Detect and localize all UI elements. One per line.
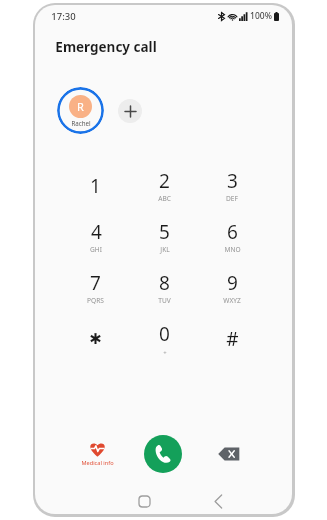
button[interactable]: R (57, 87, 104, 134)
button[interactable]: 7 (61, 264, 130, 315)
button[interactable]: 8 (130, 264, 198, 315)
button[interactable]: 2 (130, 162, 198, 213)
staticText: MNO (224, 245, 241, 254)
button[interactable]: Home (129, 488, 159, 514)
button[interactable]: Back (203, 488, 233, 514)
staticText: Medical info (81, 459, 114, 467)
staticText: 6 (227, 219, 238, 245)
staticText: Rachel (71, 119, 91, 127)
staticText: GHI (90, 245, 102, 254)
staticText: 9 (227, 270, 238, 296)
button[interactable]: # (198, 315, 266, 366)
staticText: PQRS (87, 296, 104, 305)
staticText: 2 (159, 168, 170, 194)
button[interactable]: Call (144, 435, 182, 473)
button[interactable]: Medical info (65, 428, 130, 480)
button[interactable]: 6 (198, 213, 266, 264)
button[interactable]: 3 (198, 162, 266, 213)
button[interactable]: 4 (61, 213, 130, 264)
staticText: 17:30 (51, 10, 76, 23)
staticText: ABC (158, 194, 171, 203)
staticText: # (226, 326, 239, 352)
staticText: 5 (159, 219, 170, 245)
staticText: ✱ (89, 330, 102, 347)
staticText: 100% (250, 10, 272, 22)
staticText: 1 (90, 173, 101, 199)
staticText: TUV (158, 296, 171, 305)
button[interactable]: 0 (130, 315, 198, 366)
staticText: 4 (91, 219, 102, 245)
staticText: + (163, 349, 167, 357)
staticText: 0 (159, 321, 170, 347)
staticText: DEF (226, 194, 238, 203)
staticText: 8 (159, 270, 170, 296)
button[interactable]: 1 (61, 162, 130, 213)
staticText: WXYZ (223, 296, 241, 305)
staticText: 7 (90, 270, 101, 296)
button[interactable]: 9 (198, 264, 266, 315)
button[interactable]: 5 (130, 213, 198, 264)
button[interactable]: Backspace (216, 445, 242, 463)
button[interactable]: Add contact (118, 99, 142, 123)
staticText: 3 (227, 168, 238, 194)
button[interactable]: ✱ (61, 315, 130, 366)
staticText: Emergency call (55, 38, 157, 56)
staticText: JKL (160, 245, 170, 254)
staticText: R (77, 99, 84, 114)
